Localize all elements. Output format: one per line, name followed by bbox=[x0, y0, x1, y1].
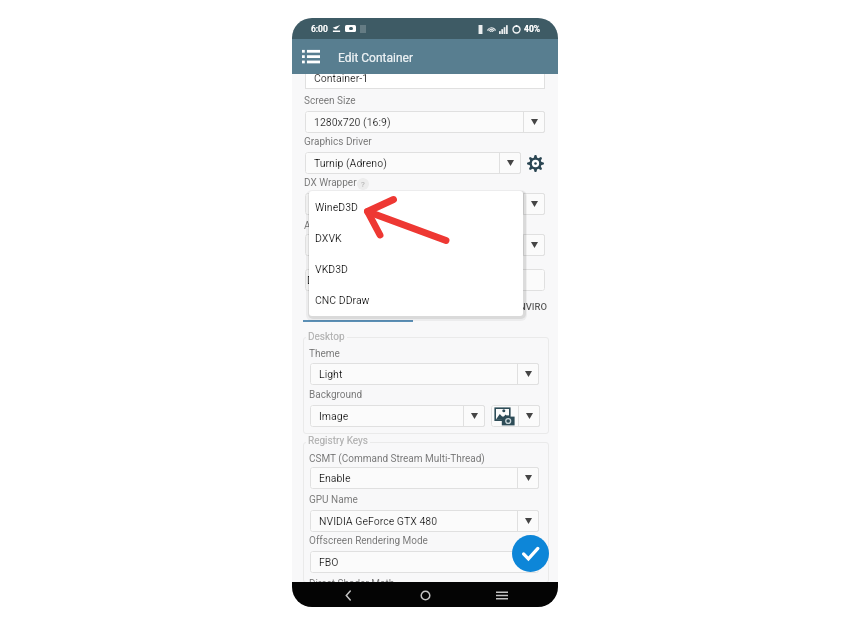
button[interactable]: WineD3D bbox=[309, 191, 523, 222]
staticText: WineD3D bbox=[315, 201, 358, 213]
button[interactable]: Open navigation menu bbox=[297, 39, 324, 74]
staticText: Enable bbox=[319, 472, 517, 484]
staticText: Screen Size bbox=[304, 95, 356, 107]
button[interactable]: CNC DDraw bbox=[309, 284, 523, 315]
staticText: FBO bbox=[319, 556, 539, 568]
button[interactable]: Turnip (Adreno) bbox=[305, 152, 521, 174]
staticText bbox=[314, 239, 523, 251]
staticText: ? bbox=[361, 180, 365, 189]
button[interactable]: Image bbox=[310, 405, 485, 427]
button[interactable]: VKD3D bbox=[309, 253, 523, 284]
button[interactable]: FBO bbox=[310, 551, 539, 573]
staticText: Light bbox=[319, 368, 517, 380]
staticText: Image bbox=[319, 410, 463, 422]
staticText: DX Wrapper bbox=[304, 177, 357, 189]
button[interactable]: Recent apps bbox=[487, 583, 517, 607]
staticText: 6:00 bbox=[311, 24, 328, 34]
staticText: GPU Name bbox=[309, 494, 358, 506]
button[interactable]: Light bbox=[310, 363, 539, 385]
button[interactable]: Back bbox=[333, 583, 363, 607]
button[interactable]: Driver settings bbox=[527, 155, 544, 172]
button[interactable] bbox=[305, 193, 545, 215]
staticText: D bbox=[307, 274, 314, 286]
staticText: Offscreen Rendering Mode bbox=[309, 535, 428, 547]
button[interactable] bbox=[305, 234, 545, 256]
staticText: Container-1 bbox=[314, 72, 369, 84]
staticText bbox=[314, 198, 523, 210]
button[interactable]: Enable bbox=[310, 467, 539, 489]
staticText: DXVK bbox=[315, 232, 342, 244]
button[interactable]: DXVK bbox=[309, 222, 523, 253]
button[interactable]: 1280x720 (16:9) bbox=[305, 111, 545, 133]
staticText: Graphics Driver bbox=[304, 136, 372, 148]
staticText: CSMT (Command Stream Multi-Thread) bbox=[309, 453, 485, 465]
button[interactable]: Home bbox=[410, 583, 440, 607]
button[interactable]: Save container bbox=[512, 535, 549, 572]
staticText: Theme bbox=[309, 348, 340, 360]
staticText: NVIDIA GeForce GTX 480 bbox=[319, 515, 517, 527]
staticText: Direct Shader Math bbox=[309, 578, 395, 590]
button[interactable]: NVIDIA GeForce GTX 480 bbox=[310, 510, 539, 532]
staticText: 1280x720 (16:9) bbox=[314, 116, 523, 128]
button[interactable]: Pick background image bbox=[491, 405, 540, 427]
staticText: NVIRO bbox=[519, 301, 548, 312]
staticText: Edit Container bbox=[338, 51, 414, 65]
staticText: CNC DDraw bbox=[315, 294, 370, 306]
staticText: Turnip (Adreno) bbox=[314, 157, 499, 169]
staticText: VKD3D bbox=[315, 263, 348, 275]
button[interactable]: Help bbox=[357, 178, 369, 190]
staticText: Registry Keys bbox=[308, 435, 368, 447]
staticText: 40% bbox=[524, 24, 541, 34]
staticText: Desktop bbox=[308, 331, 345, 343]
staticText: Background bbox=[309, 389, 363, 401]
staticText: A bbox=[304, 220, 311, 232]
